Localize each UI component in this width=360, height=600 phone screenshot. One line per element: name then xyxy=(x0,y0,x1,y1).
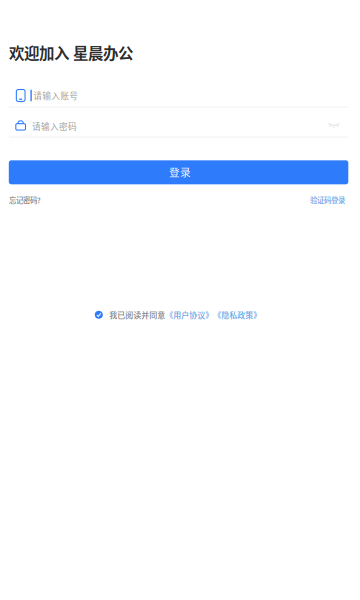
staticText: 《用户协议》《隐私政策》 xyxy=(165,309,261,321)
staticText: 验证码登录 xyxy=(310,194,345,205)
staticText: 请输入账号 xyxy=(33,89,78,102)
button[interactable]: 忘记密码? xyxy=(9,194,41,205)
staticText: 登录 xyxy=(169,164,191,179)
staticText: 欢迎加入 星晨办公 xyxy=(9,41,133,64)
button[interactable]: 我已阅读并同意 xyxy=(95,309,261,321)
staticText: 我已阅读并同意 xyxy=(109,309,165,321)
button[interactable]: 验证码登录 xyxy=(305,194,345,205)
staticText: 忘记密码? xyxy=(9,194,41,205)
button[interactable]: Show password xyxy=(325,116,343,132)
staticText: 请输入密码 xyxy=(32,120,77,132)
button[interactable]: 登录 xyxy=(9,160,348,184)
